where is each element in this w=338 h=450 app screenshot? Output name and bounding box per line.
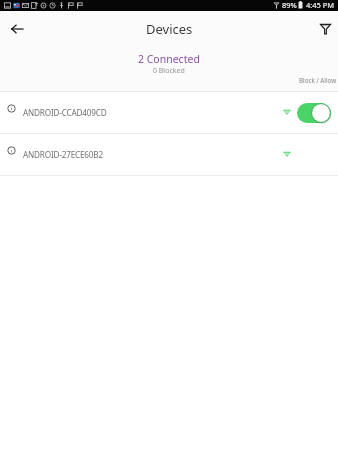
staticText: Devices	[146, 20, 193, 38]
staticText: 2 Connected	[138, 52, 200, 66]
button[interactable]: Toggle device allowed	[297, 103, 331, 123]
staticText: 4:45 PM	[306, 0, 335, 10]
staticText: ANDROID-CCAD409CD	[23, 107, 107, 118]
button[interactable]: Back	[4, 16, 30, 42]
button[interactable]: Filter	[313, 17, 337, 41]
staticText: 89%	[282, 0, 297, 10]
staticText: ANDROID-27ECE60B2	[23, 149, 103, 160]
button[interactable]: ANDROID-27ECE60B2	[0, 134, 338, 175]
button[interactable]: ANDROID-CCAD409CD	[0, 92, 338, 133]
staticText: 0 Blocked	[153, 66, 185, 76]
staticText: Block / Allow	[299, 76, 337, 85]
